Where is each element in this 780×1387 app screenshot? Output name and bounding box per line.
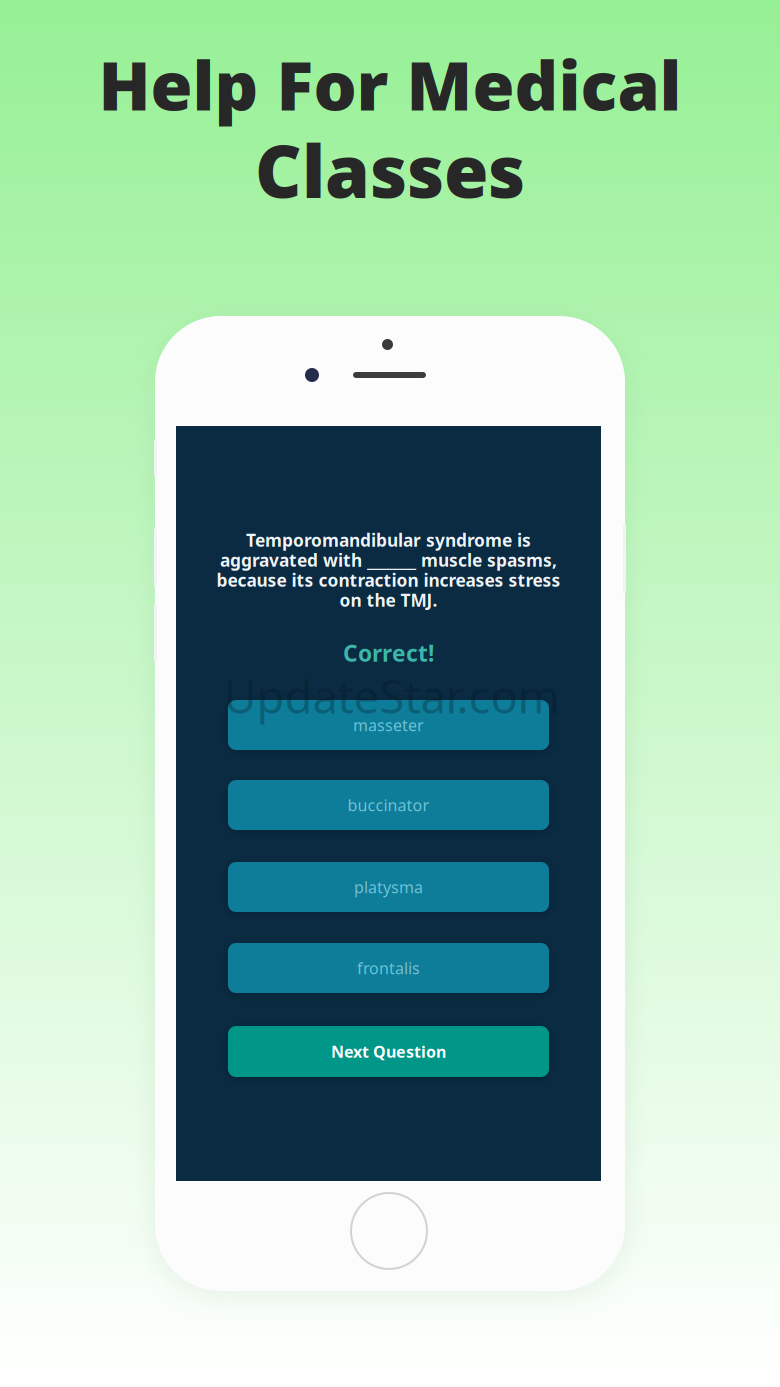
button[interactable]: buccinator bbox=[228, 780, 549, 830]
staticText: because its contraction increases stress bbox=[216, 568, 560, 591]
staticText: Classes bbox=[255, 122, 525, 218]
staticText: Help For Medical bbox=[98, 39, 681, 129]
staticText: UpdateStar.com bbox=[223, 666, 559, 726]
button[interactable]: frontalis bbox=[228, 943, 549, 993]
staticText: frontalis bbox=[357, 957, 420, 979]
staticText: Temporomandibular syndrome is bbox=[246, 528, 531, 551]
button[interactable]: Next Question bbox=[228, 1026, 549, 1077]
button[interactable]: Correct! bbox=[176, 641, 601, 665]
staticText: Correct! bbox=[343, 638, 434, 668]
staticText: on the TMJ. bbox=[339, 588, 437, 611]
button[interactable]: masseter bbox=[228, 700, 549, 750]
staticText: aggravated with _______ muscle spasms, bbox=[220, 548, 557, 571]
staticText: masseter bbox=[353, 714, 424, 736]
button[interactable]: platysma bbox=[228, 862, 549, 912]
staticText: buccinator bbox=[347, 794, 429, 816]
staticText: platysma bbox=[354, 876, 423, 898]
staticText: Next Question bbox=[331, 1041, 446, 1062]
